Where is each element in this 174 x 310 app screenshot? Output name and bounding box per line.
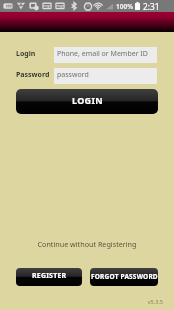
button[interactable]: password: [54, 68, 157, 84]
staticText: 100%: [116, 2, 134, 11]
button[interactable]: FORGOT PASSWORD: [90, 268, 158, 286]
staticText: Continue without Registering: [0, 239, 174, 249]
other: Battery 100 percent: [135, 2, 140, 11]
staticText: Login: [16, 49, 36, 59]
button[interactable]: LOGIN: [16, 89, 158, 114]
staticText: 2:31 AM: [143, 1, 174, 12]
other: Wi-Fi signal: [93, 1, 103, 11]
staticText: Password: [16, 70, 50, 80]
other: Mobile signal: [105, 2, 114, 11]
staticText: REGISTER: [32, 271, 67, 281]
button[interactable]: REGISTER: [16, 268, 82, 286]
staticText: Phone, email or Member ID: [57, 49, 148, 59]
staticText: password: [57, 70, 89, 80]
staticText: LOGIN: [72, 94, 103, 106]
button[interactable]: Phone, email or Member ID: [54, 47, 157, 63]
staticText: v5.3.5: [0, 298, 163, 305]
staticText: FORGOT PASSWORD: [91, 272, 158, 281]
